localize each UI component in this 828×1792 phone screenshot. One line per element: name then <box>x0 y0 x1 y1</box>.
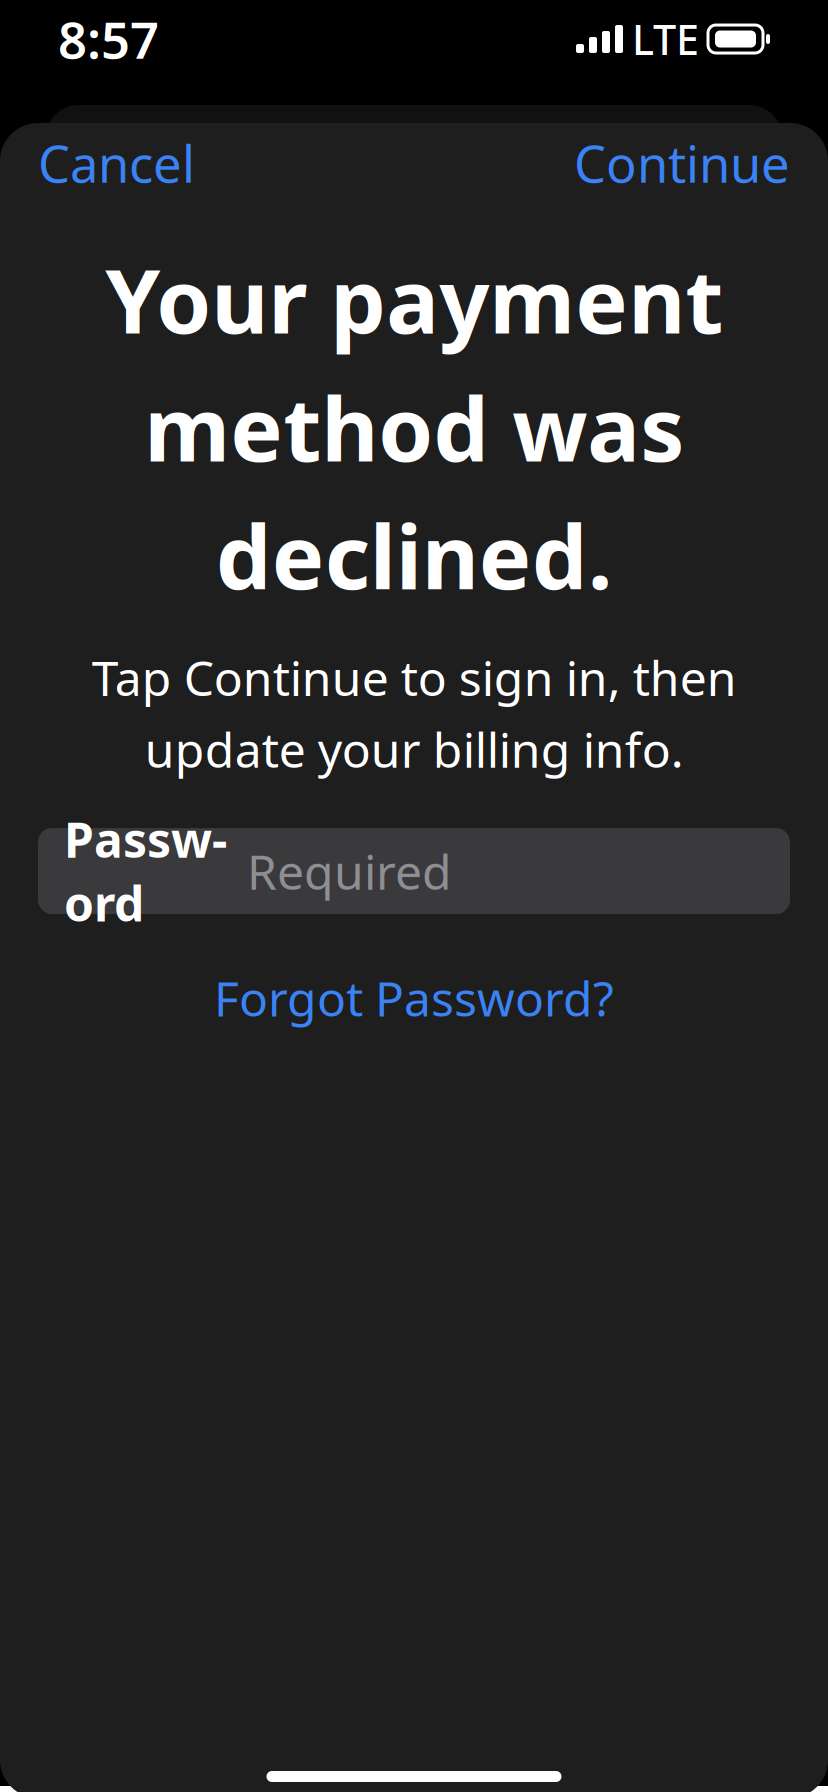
button[interactable]: Continue <box>536 123 828 203</box>
staticText: Your payment method was declined. <box>105 241 723 614</box>
staticText: 8:57 <box>58 5 159 73</box>
staticText: Required <box>247 839 452 903</box>
staticText: Password <box>64 807 227 935</box>
button[interactable]: Forgot Password? <box>184 956 644 1040</box>
staticText: Tap Continue to sign in, then update you… <box>91 646 736 781</box>
staticText: Continue <box>574 129 790 197</box>
button[interactable]: Cancel <box>0 123 233 203</box>
staticText: Cancel <box>38 129 195 197</box>
button[interactable]: Password <box>38 828 790 914</box>
staticText: LTE <box>632 12 699 66</box>
staticText: Forgot Password? <box>214 966 614 1030</box>
